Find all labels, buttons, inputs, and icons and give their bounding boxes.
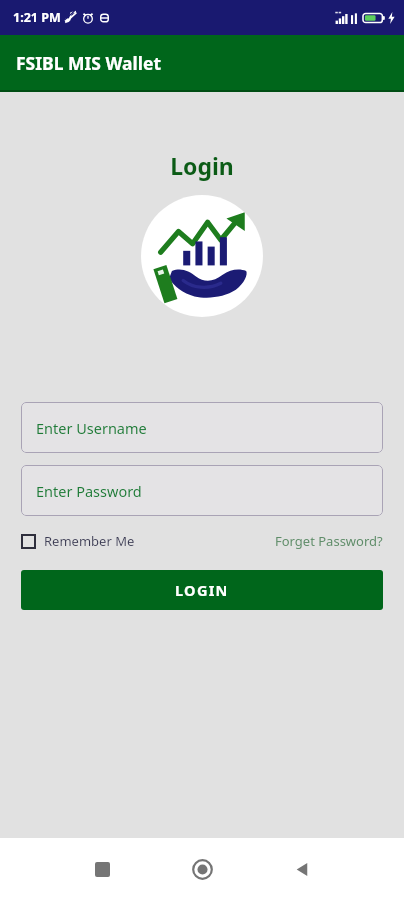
button[interactable]: Enter Username [21, 402, 383, 453]
button[interactable]: Recent apps [52, 838, 152, 900]
staticText: LOGIN [175, 580, 229, 600]
staticText: 1:21 PM [13, 9, 61, 26]
staticText: Remember Me [44, 532, 135, 550]
button[interactable]: Home [152, 838, 252, 900]
button[interactable]: Enter Password [21, 465, 383, 516]
staticText: Enter Username [36, 418, 147, 438]
button[interactable]: Back [252, 838, 352, 900]
staticText: Enter Password [36, 481, 142, 501]
staticText: FSIBL MIS Wallet [16, 51, 162, 75]
button[interactable]: Forget Password? [269, 532, 383, 550]
button[interactable]: Remember Me [21, 532, 141, 550]
staticText: Forget Password? [275, 532, 383, 550]
button[interactable]: LOGIN [21, 570, 383, 610]
staticText: Login [0, 150, 404, 181]
